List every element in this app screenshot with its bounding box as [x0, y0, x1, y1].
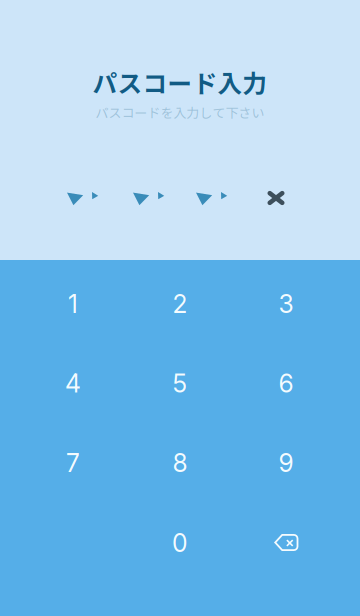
- staticText: 8: [172, 448, 187, 478]
- button[interactable]: 3: [238, 269, 334, 339]
- button[interactable]: 5: [132, 348, 228, 418]
- button[interactable]: 4: [25, 348, 121, 418]
- staticText: 7: [66, 448, 80, 478]
- button[interactable]: 9: [238, 428, 334, 498]
- staticText: 1: [68, 289, 78, 319]
- button[interactable]: 8: [132, 428, 228, 498]
- button[interactable]: 7: [25, 428, 121, 498]
- button[interactable]: 1: [25, 269, 121, 339]
- staticText: 4: [65, 368, 81, 398]
- staticText: 9: [278, 448, 293, 478]
- button[interactable]: 0: [132, 508, 228, 578]
- staticText: 6: [278, 368, 293, 398]
- staticText: パスコード入力: [92, 64, 267, 100]
- staticText: 3: [278, 289, 293, 319]
- staticText: 5: [172, 368, 187, 398]
- button[interactable]: 2: [132, 269, 228, 339]
- button[interactable]: 6: [238, 348, 334, 418]
- button[interactable]: Clear passcode: [256, 182, 296, 214]
- staticText: 0: [172, 528, 188, 558]
- staticText: 2: [172, 289, 187, 319]
- button[interactable]: Delete: [238, 508, 334, 578]
- staticText: パスコードを入力して下さい: [95, 103, 264, 121]
